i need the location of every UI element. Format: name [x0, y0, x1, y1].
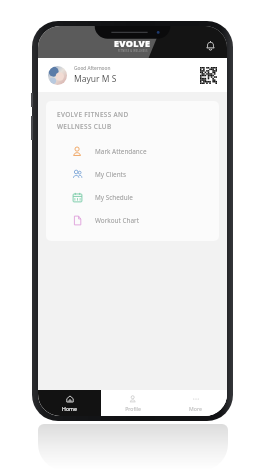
staticText: Home [62, 405, 77, 412]
staticText: FITNESS & WELLNESS [118, 49, 148, 53]
button[interactable]: Profile photo [48, 66, 67, 85]
staticText: Mark Attendance [95, 147, 147, 156]
button[interactable]: Home [38, 390, 101, 416]
staticText: More [189, 405, 202, 412]
button[interactable]: Notifications [201, 36, 219, 54]
staticText: EVOLVE FITNESS AND [57, 110, 129, 119]
staticText: Workout Chart [95, 216, 140, 225]
staticText: Profile [125, 405, 141, 412]
button[interactable]: My Schedule [46, 186, 219, 209]
staticText: My Clients [95, 170, 126, 179]
button[interactable]: Mark Attendance [46, 140, 219, 163]
button[interactable]: My Clients [46, 163, 219, 186]
button[interactable]: Workout Chart [46, 209, 219, 232]
button[interactable]: Profile [101, 390, 164, 416]
staticText: WELLNESS CLUB [57, 122, 112, 131]
staticText: Good Afternoon [74, 65, 111, 72]
staticText: EVOLVE [114, 37, 151, 49]
button[interactable]: QR code [200, 67, 217, 84]
staticText: My Schedule [95, 193, 133, 202]
button[interactable]: More [164, 390, 227, 416]
staticText: Mayur M S [74, 73, 117, 85]
